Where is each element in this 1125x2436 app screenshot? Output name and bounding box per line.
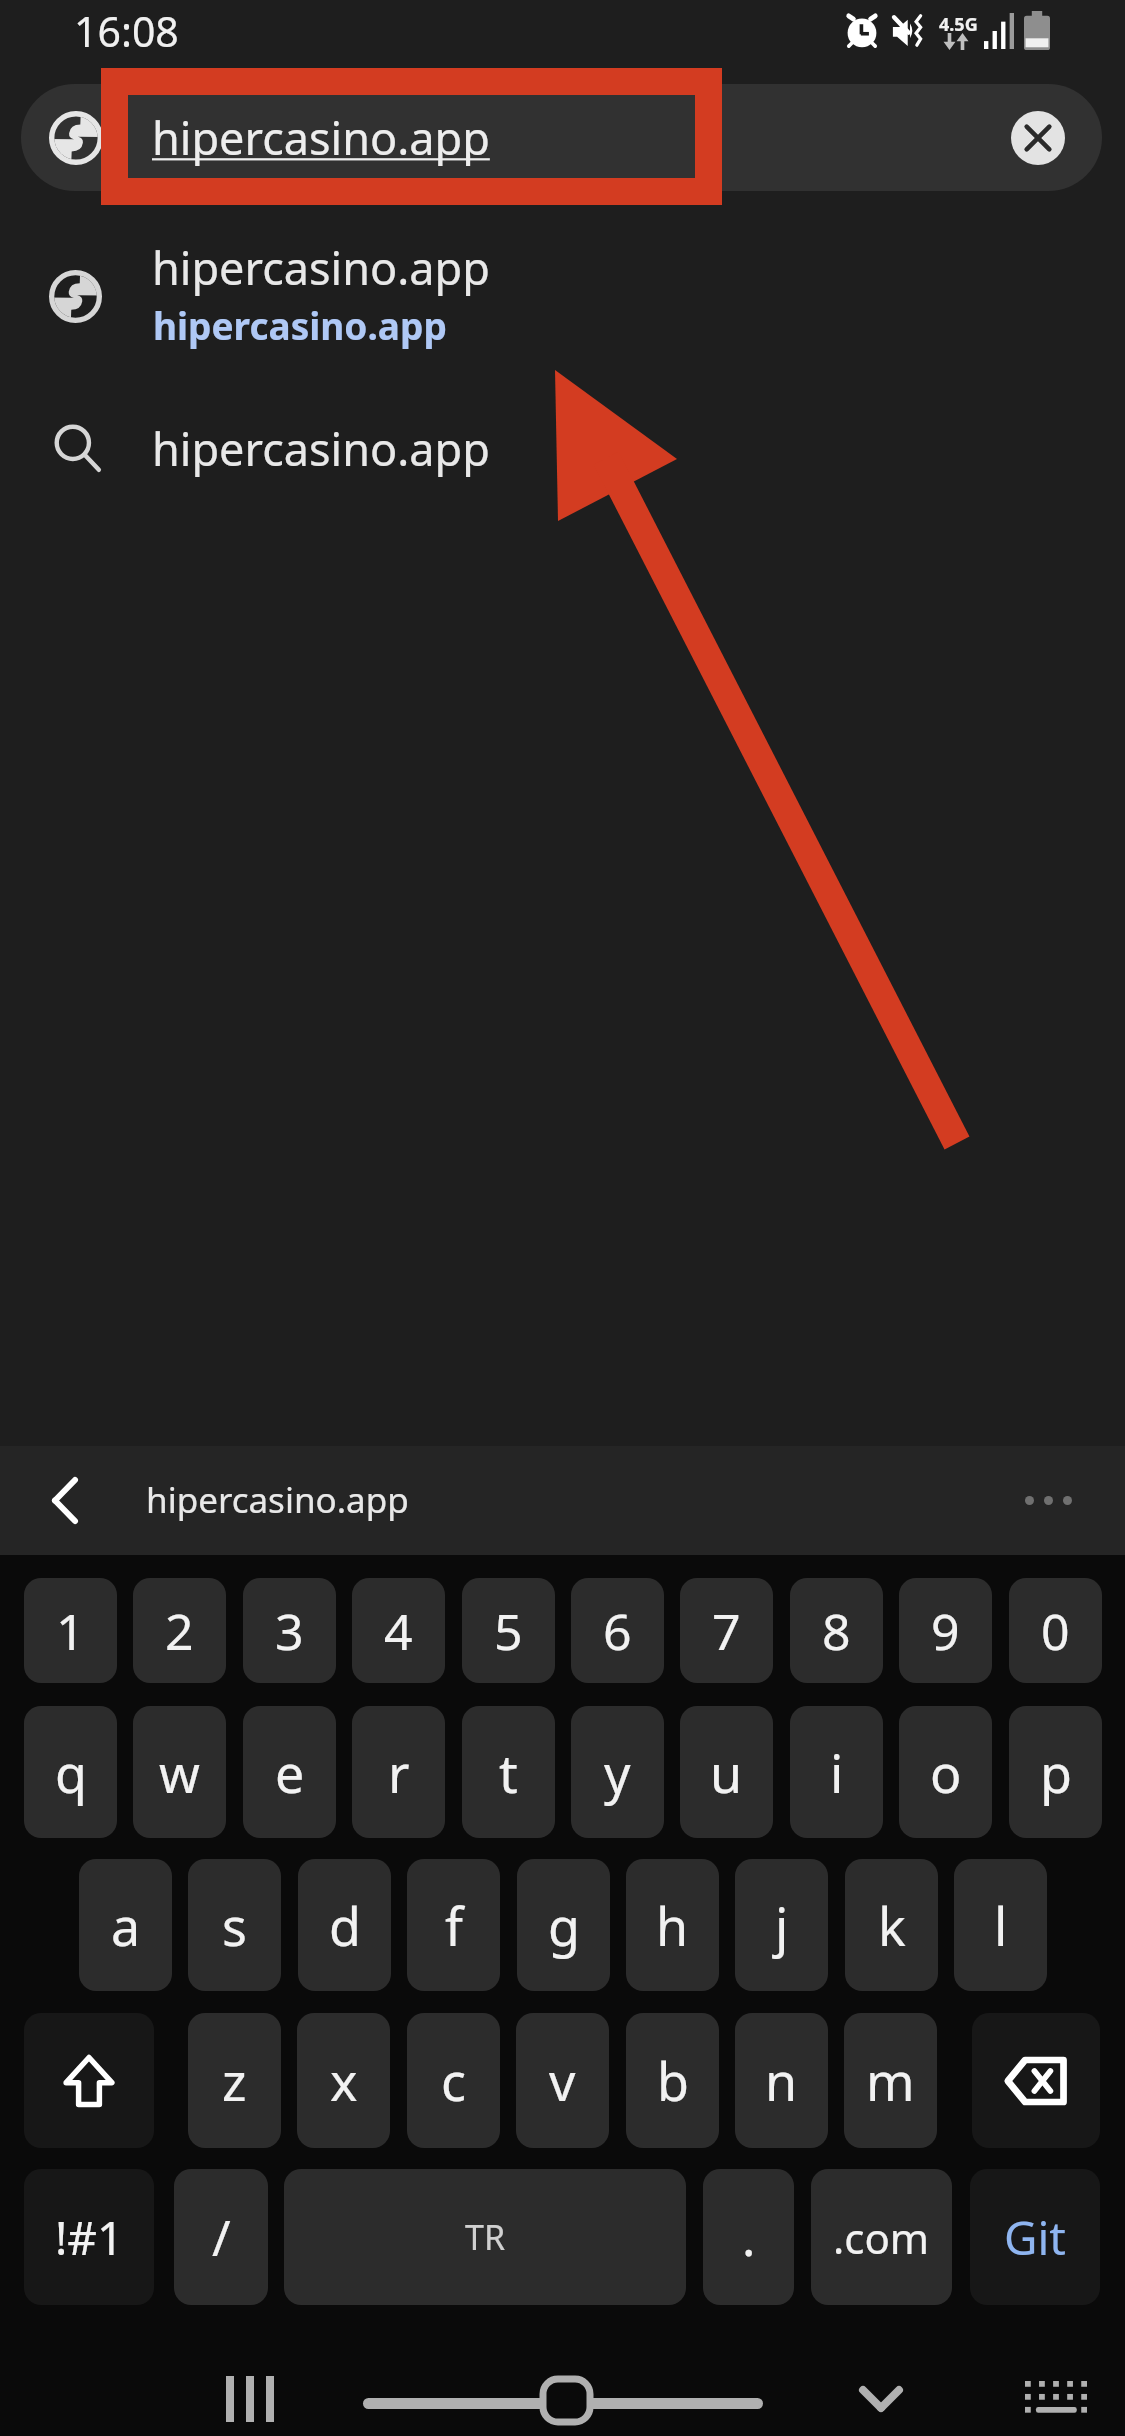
staticText: 8 bbox=[822, 1597, 851, 1665]
button[interactable]: Clear bbox=[1011, 111, 1065, 165]
button[interactable]: 3 bbox=[243, 1578, 336, 1683]
button[interactable]: 8 bbox=[790, 1578, 883, 1683]
button[interactable]: i bbox=[790, 1706, 883, 1838]
button[interactable]: v bbox=[516, 2013, 609, 2148]
staticText: m bbox=[866, 2045, 915, 2116]
staticText: hipercasino.app bbox=[152, 418, 490, 479]
button[interactable]: Git bbox=[970, 2169, 1100, 2305]
staticText: / bbox=[212, 2203, 231, 2271]
staticText: o bbox=[930, 1737, 962, 1808]
staticText: q bbox=[55, 1737, 87, 1808]
staticText: 16:08 bbox=[74, 3, 179, 59]
button[interactable]: Change keyboard bbox=[1011, 2354, 1101, 2436]
button[interactable]: 1 bbox=[24, 1578, 117, 1683]
staticText: g bbox=[548, 1890, 580, 1961]
staticText: 9 bbox=[931, 1597, 960, 1665]
button[interactable]: k bbox=[845, 1859, 938, 1991]
button[interactable]: / bbox=[174, 2169, 268, 2305]
button[interactable]: hipercasino.app bbox=[0, 386, 1125, 526]
staticText: s bbox=[222, 1890, 247, 1961]
staticText: l bbox=[994, 1890, 1008, 1961]
button[interactable]: 7 bbox=[680, 1578, 773, 1683]
button[interactable]: t bbox=[462, 1706, 555, 1838]
button[interactable]: h bbox=[626, 1859, 719, 1991]
button[interactable]: g bbox=[517, 1859, 610, 1991]
button[interactable]: b bbox=[626, 2013, 719, 2148]
button[interactable]: 2 bbox=[133, 1578, 226, 1683]
button[interactable]: a bbox=[79, 1859, 172, 1991]
staticText: 4 bbox=[384, 1597, 413, 1665]
staticText: p bbox=[1040, 1737, 1072, 1808]
staticText: Git bbox=[1004, 2206, 1066, 2269]
staticText: hipercasino.app bbox=[152, 237, 490, 298]
staticText: 2 bbox=[165, 1597, 194, 1665]
button[interactable]: Home bbox=[348, 2359, 778, 2436]
button[interactable]: o bbox=[899, 1706, 992, 1838]
staticText: e bbox=[275, 1737, 305, 1808]
button[interactable]: hipercasino.app bbox=[21, 84, 1102, 191]
button[interactable]: p bbox=[1009, 1706, 1102, 1838]
staticText: c bbox=[441, 2045, 466, 2116]
button[interactable]: 6 bbox=[571, 1578, 664, 1683]
staticText: r bbox=[388, 1737, 410, 1808]
button[interactable]: w bbox=[133, 1706, 226, 1838]
button[interactable]: !#1 bbox=[24, 2169, 154, 2305]
staticText: . bbox=[742, 2203, 756, 2271]
button[interactable]: f bbox=[407, 1859, 500, 1991]
staticText: 0 bbox=[1041, 1597, 1070, 1665]
button[interactable]: s bbox=[188, 1859, 281, 1991]
button[interactable]: 0 bbox=[1009, 1578, 1102, 1683]
button[interactable]: hipercasino.app bbox=[0, 216, 1125, 381]
staticText: x bbox=[330, 2045, 358, 2116]
staticText: d bbox=[329, 1890, 361, 1961]
button[interactable]: . bbox=[703, 2169, 794, 2305]
button[interactable]: 5 bbox=[462, 1578, 555, 1683]
button[interactable]: TR bbox=[284, 2169, 686, 2305]
button[interactable]: y bbox=[571, 1706, 664, 1838]
button[interactable]: 9 bbox=[899, 1578, 992, 1683]
staticText: TR bbox=[465, 2214, 506, 2260]
staticText: 5 bbox=[494, 1597, 523, 1665]
button[interactable]: m bbox=[844, 2013, 937, 2148]
staticText: v bbox=[549, 2045, 576, 2116]
button[interactable]: r bbox=[352, 1706, 445, 1838]
staticText: i bbox=[830, 1737, 844, 1808]
button[interactable]: 4 bbox=[352, 1578, 445, 1683]
staticText: hipercasino.app bbox=[153, 300, 447, 350]
staticText: hipercasino.app bbox=[152, 107, 490, 168]
staticText: h bbox=[656, 1890, 689, 1961]
staticText: w bbox=[159, 1737, 200, 1808]
button[interactable]: Previous bbox=[25, 1460, 105, 1540]
staticText: f bbox=[445, 1890, 463, 1961]
staticText: j bbox=[775, 1890, 789, 1961]
button[interactable]: c bbox=[407, 2013, 500, 2148]
button[interactable]: Recents bbox=[205, 2354, 295, 2436]
staticText: a bbox=[111, 1890, 141, 1961]
button[interactable]: z bbox=[188, 2013, 281, 2148]
staticText: y bbox=[604, 1737, 631, 1808]
button[interactable]: x bbox=[297, 2013, 390, 2148]
staticText: 6 bbox=[603, 1597, 632, 1665]
button[interactable]: Backspace bbox=[972, 2013, 1100, 2148]
button[interactable]: u bbox=[680, 1706, 773, 1838]
staticText: u bbox=[710, 1737, 743, 1808]
button[interactable]: l bbox=[954, 1859, 1047, 1991]
button[interactable]: Shift bbox=[24, 2013, 154, 2148]
staticText: t bbox=[499, 1737, 518, 1808]
button[interactable]: j bbox=[735, 1859, 828, 1991]
staticText: hipercasino.app bbox=[146, 1476, 409, 1524]
staticText: n bbox=[765, 2045, 798, 2116]
staticText: k bbox=[878, 1890, 906, 1961]
button[interactable]: More options bbox=[1016, 1468, 1080, 1532]
button[interactable]: Hide keyboard bbox=[836, 2354, 926, 2436]
button[interactable]: e bbox=[243, 1706, 336, 1838]
button[interactable]: n bbox=[735, 2013, 828, 2148]
staticText: 3 bbox=[275, 1597, 304, 1665]
button[interactable]: q bbox=[24, 1706, 117, 1838]
staticText: 7 bbox=[712, 1597, 741, 1665]
staticText: 1 bbox=[56, 1597, 85, 1665]
staticText: 4.5G bbox=[939, 12, 978, 37]
button[interactable]: .com bbox=[811, 2169, 952, 2305]
staticText: b bbox=[657, 2045, 689, 2116]
button[interactable]: d bbox=[298, 1859, 391, 1991]
